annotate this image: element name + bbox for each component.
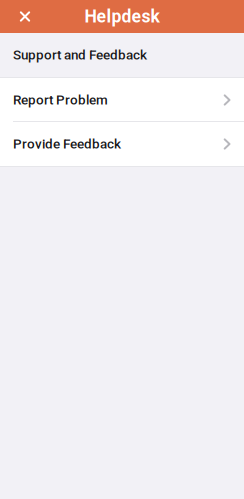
staticText: Support and Feedback <box>13 47 147 63</box>
staticText: Report Problem <box>13 92 108 108</box>
button[interactable]: Close <box>0 0 50 33</box>
button[interactable]: Provide Feedback <box>0 122 244 166</box>
staticText: Helpdesk <box>84 6 159 27</box>
button[interactable]: Report Problem <box>0 78 244 122</box>
staticText: Provide Feedback <box>13 136 121 152</box>
